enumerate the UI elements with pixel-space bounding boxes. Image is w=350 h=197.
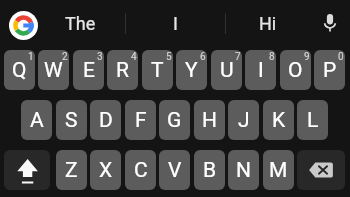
staticText: Y bbox=[185, 58, 198, 83]
button[interactable]: R bbox=[107, 50, 138, 90]
staticText: B bbox=[203, 158, 217, 183]
button[interactable]: M bbox=[263, 150, 294, 190]
staticText: T bbox=[151, 58, 164, 83]
staticText: Hi bbox=[259, 13, 277, 34]
button[interactable]: G bbox=[159, 100, 190, 140]
staticText: 6 bbox=[200, 51, 206, 63]
staticText: C bbox=[134, 158, 148, 183]
staticText: 5 bbox=[166, 51, 172, 63]
staticText: I bbox=[173, 13, 178, 34]
staticText: M bbox=[269, 158, 288, 183]
staticText: O bbox=[288, 58, 303, 83]
button[interactable]: Voice input bbox=[310, 0, 350, 45]
button[interactable]: Q bbox=[4, 50, 35, 90]
button[interactable]: The bbox=[35, 0, 125, 45]
staticText: 0 bbox=[338, 51, 344, 63]
button[interactable]: P bbox=[314, 50, 345, 90]
button[interactable]: X bbox=[90, 150, 121, 190]
button[interactable]: C bbox=[125, 150, 156, 190]
staticText: The bbox=[65, 13, 96, 34]
staticText: R bbox=[116, 58, 129, 83]
staticText: Z bbox=[65, 158, 78, 183]
staticText: 8 bbox=[269, 51, 275, 63]
button[interactable]: K bbox=[263, 100, 294, 140]
button[interactable]: Shift bbox=[4, 150, 50, 190]
button[interactable]: A bbox=[21, 100, 52, 140]
staticText: 2 bbox=[62, 51, 68, 63]
button[interactable]: U bbox=[211, 50, 242, 90]
staticText: 4 bbox=[131, 51, 137, 63]
button[interactable]: Hi bbox=[225, 0, 310, 45]
button[interactable]: S bbox=[56, 100, 87, 140]
button[interactable]: H bbox=[194, 100, 225, 140]
staticText: 7 bbox=[235, 51, 241, 63]
staticText: F bbox=[135, 108, 147, 133]
button[interactable]: L bbox=[297, 100, 328, 140]
button[interactable]: W bbox=[38, 50, 69, 90]
button[interactable]: Y bbox=[176, 50, 207, 90]
staticText: D bbox=[99, 108, 113, 133]
staticText: W bbox=[44, 58, 63, 83]
staticText: E bbox=[83, 58, 95, 83]
staticText: Q bbox=[12, 58, 27, 83]
staticText: J bbox=[238, 108, 250, 133]
staticText: S bbox=[65, 108, 78, 133]
staticText: X bbox=[99, 158, 113, 183]
staticText: A bbox=[30, 108, 44, 133]
staticText: K bbox=[272, 108, 286, 133]
button[interactable]: O bbox=[280, 50, 311, 90]
staticText: L bbox=[307, 108, 319, 133]
button[interactable]: F bbox=[125, 100, 156, 140]
staticText: 1 bbox=[28, 51, 34, 63]
staticText: I bbox=[258, 58, 264, 83]
staticText: U bbox=[220, 58, 234, 83]
button[interactable]: E bbox=[73, 50, 104, 90]
staticText: G bbox=[167, 108, 182, 133]
staticText: V bbox=[168, 158, 182, 183]
staticText: P bbox=[323, 58, 337, 83]
button[interactable]: Backspace bbox=[297, 150, 345, 190]
staticText: 9 bbox=[304, 51, 310, 63]
button[interactable]: N bbox=[228, 150, 259, 190]
button[interactable]: Z bbox=[56, 150, 87, 190]
button[interactable]: V bbox=[159, 150, 190, 190]
button[interactable]: B bbox=[194, 150, 225, 190]
staticText: H bbox=[202, 108, 217, 133]
button[interactable]: I bbox=[245, 50, 276, 90]
button[interactable]: D bbox=[90, 100, 121, 140]
button[interactable]: Google Assistant bbox=[9, 11, 38, 40]
button[interactable]: T bbox=[142, 50, 173, 90]
staticText: N bbox=[236, 158, 251, 183]
button[interactable]: I bbox=[125, 0, 225, 45]
button[interactable]: J bbox=[228, 100, 259, 140]
staticText: 3 bbox=[97, 51, 103, 63]
